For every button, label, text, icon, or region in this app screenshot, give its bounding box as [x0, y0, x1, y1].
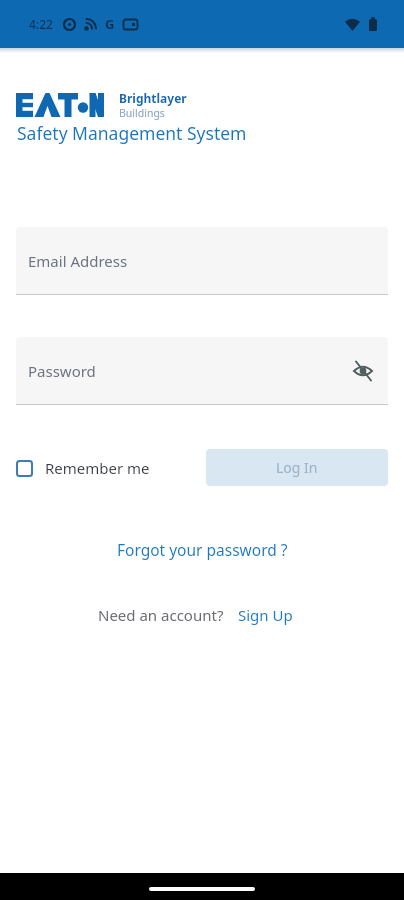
staticText: Need an account?	[98, 605, 224, 625]
staticText: G	[105, 15, 115, 33]
staticText: Password	[28, 361, 96, 381]
button[interactable]: Forgot your password ?	[117, 539, 288, 560]
staticText: Log In	[276, 458, 318, 477]
staticText: Safety Management System	[17, 121, 247, 145]
staticText: Buildings	[119, 106, 165, 120]
staticText: Remember me	[45, 458, 150, 478]
button[interactable]: Log In	[206, 449, 388, 486]
staticText: Email Address	[28, 251, 128, 271]
staticText: 4:22	[29, 16, 53, 32]
button[interactable]	[352, 360, 374, 382]
button[interactable]: Remember me	[16, 458, 150, 478]
button[interactable]: Password	[16, 337, 388, 404]
button[interactable]: Email Address	[16, 227, 388, 294]
button[interactable]: Sign Up	[238, 605, 293, 625]
staticText: Brightlayer	[119, 90, 187, 106]
